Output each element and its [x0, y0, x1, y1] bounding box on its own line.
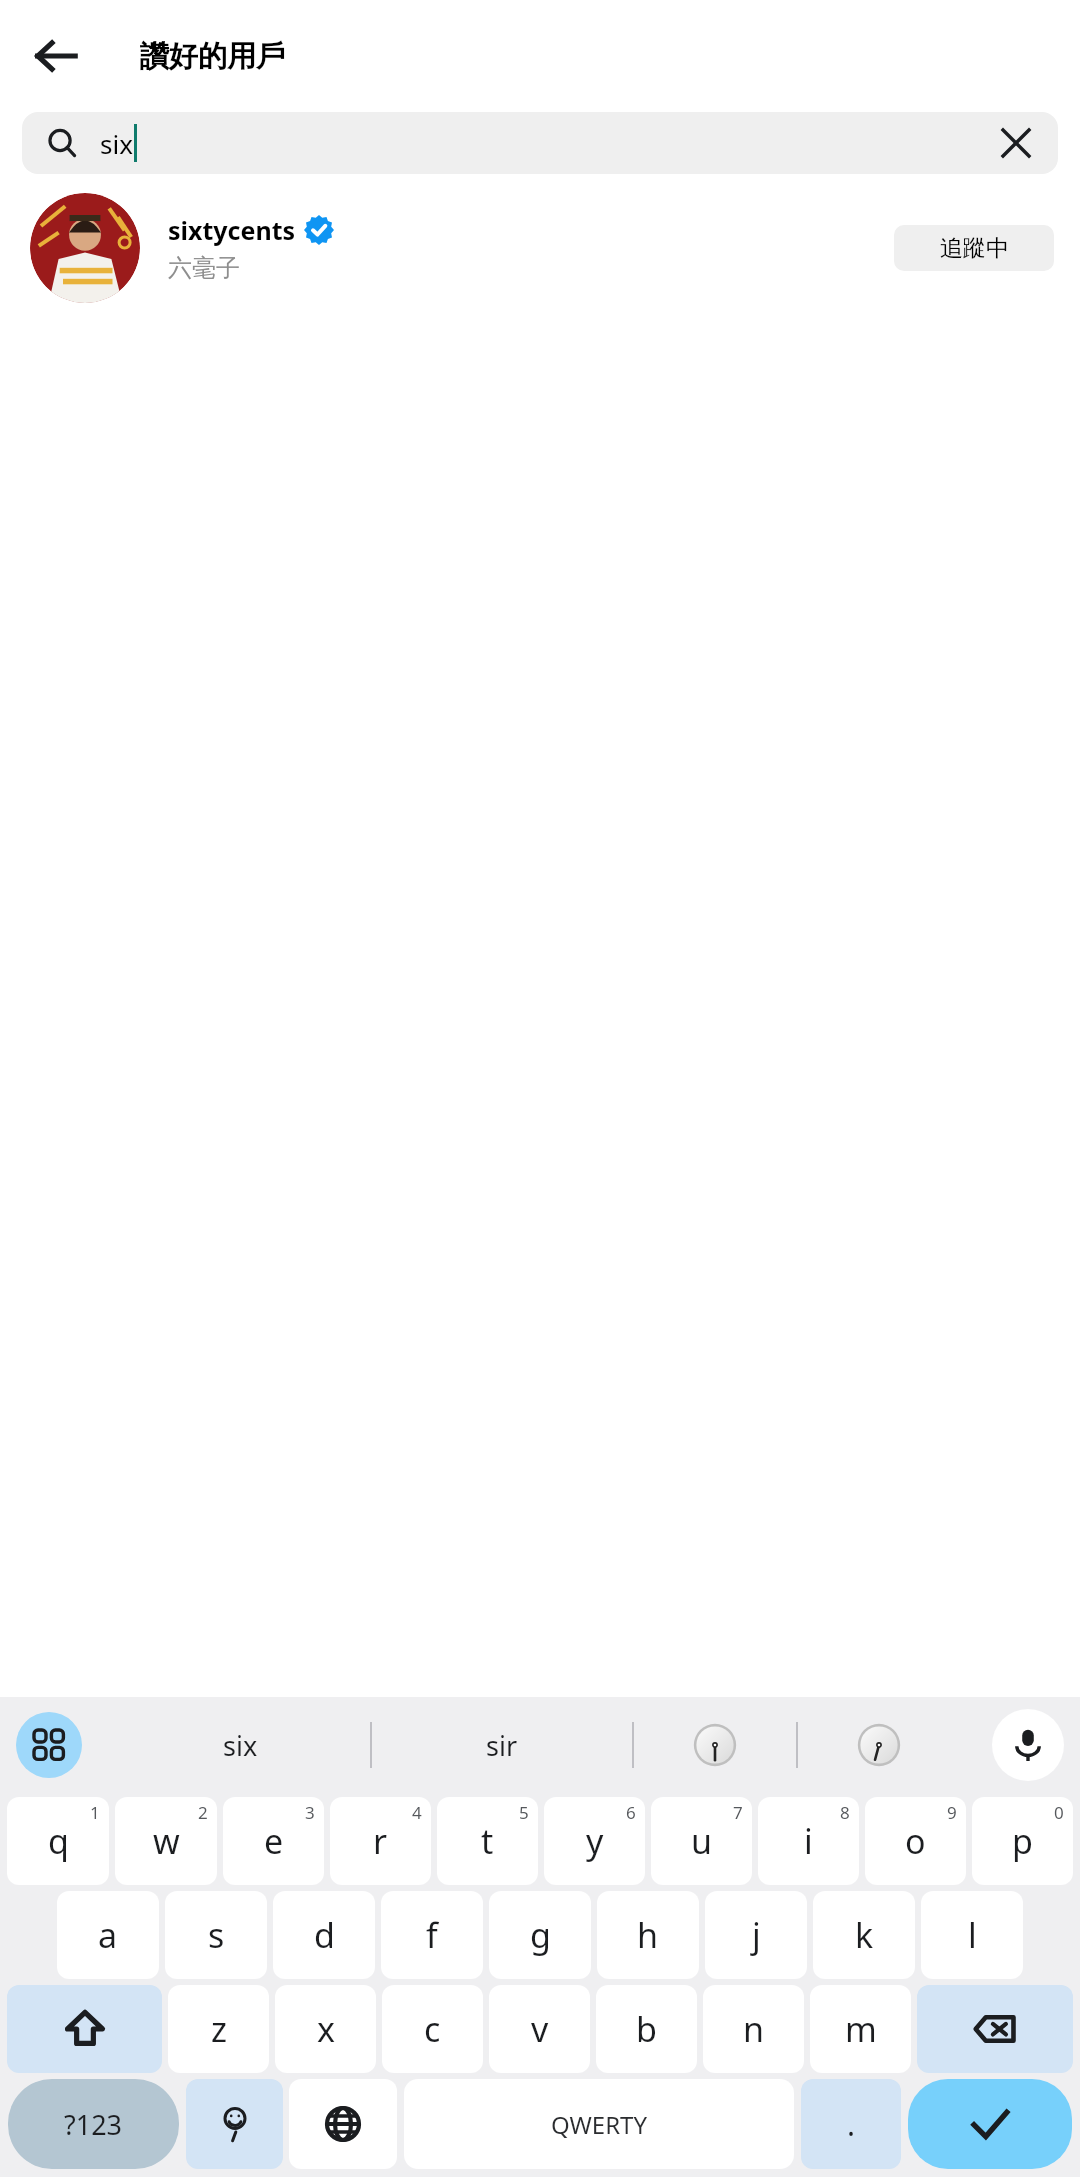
staticText: 讚好的用戶 — [140, 38, 285, 75]
staticText: sir — [486, 1727, 518, 1764]
staticText: t — [481, 1818, 494, 1864]
staticText: f — [426, 1912, 438, 1958]
button[interactable]: six — [22, 112, 1058, 174]
staticText: 5 — [519, 1801, 529, 1824]
button[interactable]: Backspace — [917, 1985, 1073, 2073]
staticText: r — [373, 1818, 388, 1864]
button[interactable]: u — [651, 1797, 752, 1885]
staticText: k — [855, 1912, 874, 1958]
staticText: six — [223, 1727, 258, 1764]
button[interactable]: 追蹤中 — [894, 225, 1054, 271]
button[interactable]: s — [165, 1891, 267, 1979]
button[interactable]: Emoji — [186, 2079, 283, 2169]
button[interactable]: QWERTY — [404, 2079, 794, 2169]
button[interactable]: six — [110, 1697, 370, 1793]
button[interactable]: z — [168, 1985, 269, 2073]
staticText: 六毫子 — [168, 253, 240, 283]
button[interactable]: o — [865, 1797, 966, 1885]
staticText: ?123 — [64, 2106, 123, 2143]
staticText: 7 — [733, 1801, 743, 1824]
button[interactable]: b — [596, 1985, 697, 2073]
button[interactable]: Shift — [7, 1985, 162, 2073]
staticText: q — [48, 1818, 69, 1864]
button[interactable]: j — [705, 1891, 807, 1979]
staticText: v — [531, 2006, 549, 2052]
button[interactable]: x — [275, 1985, 376, 2073]
button[interactable]: r — [330, 1797, 431, 1885]
staticText: y — [586, 1818, 604, 1864]
button[interactable]: t — [437, 1797, 538, 1885]
button[interactable]: y — [544, 1797, 645, 1885]
button[interactable]: sixtycents — [0, 188, 1080, 308]
staticText: i — [804, 1818, 813, 1864]
button[interactable]: g — [489, 1891, 591, 1979]
button[interactable]: Clock emoji — [634, 1697, 796, 1793]
button[interactable]: . — [801, 2079, 901, 2169]
staticText: 6 — [626, 1801, 636, 1824]
button[interactable]: l — [921, 1891, 1023, 1979]
button[interactable]: m — [810, 1985, 911, 2073]
staticText: b — [636, 2006, 657, 2052]
staticText: 8 — [840, 1801, 850, 1824]
button[interactable]: Clear — [990, 117, 1042, 169]
staticText: g — [530, 1912, 551, 1958]
staticText: j — [752, 1912, 761, 1958]
staticText: c — [424, 2006, 441, 2052]
button[interactable]: w — [115, 1797, 217, 1885]
staticText: p — [1012, 1818, 1033, 1864]
button[interactable]: e — [223, 1797, 324, 1885]
button[interactable]: Clock emoji — [798, 1697, 960, 1793]
staticText: u — [691, 1818, 713, 1864]
button[interactable]: Voice input — [992, 1709, 1064, 1781]
staticText: 2 — [198, 1801, 208, 1824]
staticText: a — [98, 1912, 118, 1958]
staticText: sixtycents — [168, 213, 296, 247]
staticText: 9 — [947, 1801, 957, 1824]
staticText: o — [905, 1818, 926, 1864]
button[interactable]: Toolbar — [16, 1712, 82, 1778]
button[interactable]: d — [273, 1891, 375, 1979]
button[interactable]: h — [597, 1891, 699, 1979]
staticText: d — [314, 1912, 335, 1958]
button[interactable]: Back — [14, 14, 98, 98]
staticText: 3 — [305, 1801, 315, 1824]
button[interactable]: i — [758, 1797, 859, 1885]
staticText: 追蹤中 — [940, 234, 1009, 263]
staticText: e — [264, 1818, 284, 1864]
staticText: z — [211, 2006, 227, 2052]
button[interactable]: a — [57, 1891, 159, 1979]
button[interactable]: v — [489, 1985, 590, 2073]
button[interactable]: Change keyboard language — [289, 2079, 397, 2169]
button[interactable]: Enter — [908, 2079, 1072, 2169]
staticText: 4 — [412, 1801, 422, 1824]
staticText: x — [317, 2006, 335, 2052]
staticText: n — [743, 2006, 765, 2052]
button[interactable]: f — [381, 1891, 483, 1979]
button[interactable]: k — [813, 1891, 915, 1979]
staticText: six — [100, 126, 133, 161]
button[interactable]: ?123 — [8, 2079, 179, 2169]
staticText: h — [637, 1912, 659, 1958]
button[interactable]: c — [382, 1985, 483, 2073]
staticText: . — [847, 2104, 856, 2145]
staticText: 1 — [90, 1801, 100, 1824]
staticText: w — [153, 1818, 180, 1864]
staticText: 0 — [1054, 1801, 1064, 1824]
button[interactable]: p — [972, 1797, 1073, 1885]
button[interactable]: n — [703, 1985, 804, 2073]
staticText: QWERTY — [551, 2108, 648, 2141]
button[interactable]: q — [7, 1797, 109, 1885]
staticText: l — [968, 1912, 977, 1958]
button[interactable]: sir — [372, 1697, 632, 1793]
staticText: m — [845, 2006, 877, 2052]
staticText: s — [208, 1912, 225, 1958]
